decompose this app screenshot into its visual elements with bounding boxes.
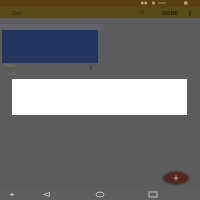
staticText: DONE <box>162 9 178 16</box>
button[interactable]: Search <box>136 7 148 18</box>
button[interactable]: Add <box>161 169 191 187</box>
button[interactable]: DONE <box>159 7 180 18</box>
button[interactable]: Recent apps <box>147 188 159 200</box>
button[interactable]: Item options <box>86 63 95 71</box>
button[interactable]: Doc <box>8 7 34 18</box>
button[interactable] <box>4 63 17 71</box>
button[interactable]: More options <box>185 7 195 18</box>
button[interactable]: Hide keyboard <box>6 188 18 200</box>
staticText: Doc <box>12 9 23 16</box>
button[interactable]: Back <box>40 188 52 200</box>
button[interactable]: Home <box>94 188 106 200</box>
